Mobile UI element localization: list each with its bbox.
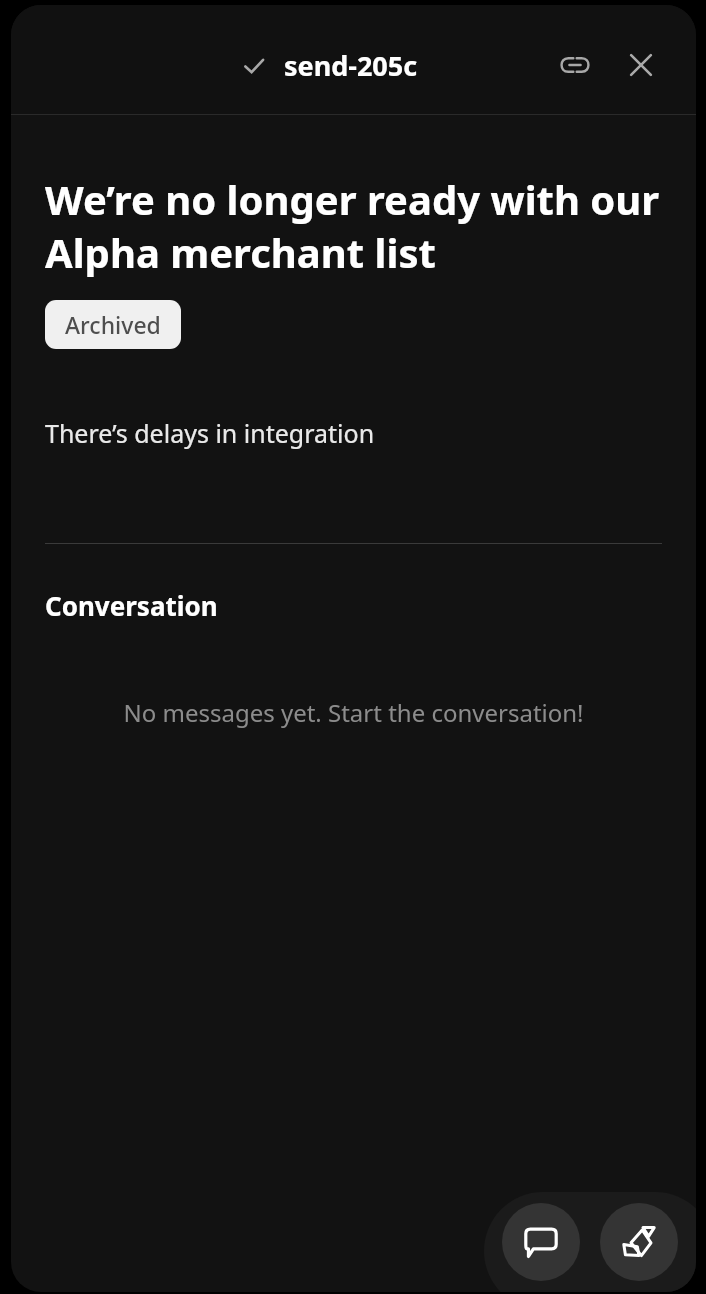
staticText: We’re no longer ready with our Alpha mer… [45, 172, 662, 280]
button[interactable]: Close [618, 42, 664, 88]
button[interactable]: Copy link [552, 42, 598, 88]
staticText: send-205c [284, 47, 418, 84]
button[interactable]: App logo action [600, 1203, 678, 1281]
staticText: Conversation [45, 588, 218, 623]
staticText: No messages yet. Start the conversation! [45, 696, 662, 729]
button[interactable]: Archived [45, 300, 181, 349]
staticText: There’s delays in integration [45, 416, 375, 450]
staticText: Archived [65, 309, 161, 340]
button[interactable]: Messages [502, 1203, 580, 1281]
